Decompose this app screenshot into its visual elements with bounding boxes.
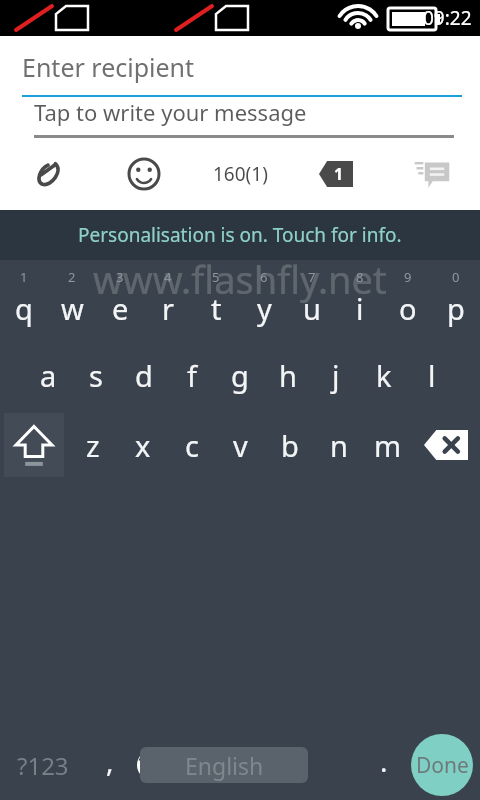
staticText: a — [40, 356, 57, 395]
button[interactable]: SIM 1 — [288, 138, 384, 210]
staticText: k — [376, 356, 392, 395]
staticText: 9 — [404, 268, 412, 286]
staticText: Done — [416, 751, 469, 780]
button[interactable]: l — [408, 340, 456, 410]
staticText: r — [162, 289, 174, 328]
staticText: 160(1) — [213, 161, 268, 187]
button[interactable]: Emoji — [96, 138, 192, 210]
staticText: 1 — [20, 268, 28, 286]
button[interactable]: English — [140, 747, 308, 783]
button[interactable]: Personalisation is on. Touch for info. — [0, 210, 480, 260]
staticText: f — [187, 356, 197, 395]
staticText: 09:22 — [423, 5, 472, 31]
staticText: o — [399, 289, 417, 328]
button[interactable]: g — [216, 340, 264, 410]
staticText: q — [15, 289, 33, 328]
button[interactable]: 1 — [0, 266, 48, 340]
button[interactable]: Attach — [0, 138, 96, 210]
button[interactable]: m — [363, 410, 412, 480]
button[interactable]: d — [120, 340, 168, 410]
staticText: e — [112, 289, 129, 328]
button[interactable]: 3 — [96, 266, 144, 340]
button[interactable]: 2 — [48, 266, 96, 340]
button[interactable]: Enter recipient — [0, 36, 480, 97]
button[interactable]: 5 — [192, 266, 240, 340]
button[interactable]: ?123 — [0, 734, 86, 796]
staticText: x — [135, 426, 151, 465]
staticText: Personalisation is on. Touch for info. — [78, 222, 402, 248]
staticText: i — [356, 289, 364, 328]
staticText: w — [61, 289, 84, 328]
button[interactable]: z — [68, 410, 118, 480]
staticText: n — [330, 426, 348, 465]
staticText: 1 — [334, 163, 344, 185]
staticText: 0 — [452, 268, 460, 286]
staticText: j — [332, 356, 340, 395]
staticText: 5 — [212, 268, 220, 286]
button[interactable]: Done — [411, 734, 473, 796]
button[interactable]: Backspace — [412, 410, 480, 480]
staticText: y — [257, 289, 272, 328]
button[interactable]: . — [360, 734, 408, 796]
button[interactable]: f — [168, 340, 216, 410]
staticText: 7 — [308, 268, 316, 286]
staticText: www.flashfly.net — [93, 253, 387, 305]
staticText: 6 — [260, 268, 268, 286]
button[interactable]: s — [72, 340, 120, 410]
button[interactable]: 9 — [384, 266, 432, 340]
button[interactable]: n — [314, 410, 363, 480]
staticText: h — [279, 356, 297, 395]
staticText: 2 — [68, 268, 76, 286]
staticText: l — [428, 356, 436, 395]
button[interactable]: b — [265, 410, 314, 480]
button[interactable]: Messages — [384, 138, 480, 210]
staticText: ?123 — [17, 749, 69, 782]
staticText: p — [447, 289, 465, 328]
button[interactable]: k — [360, 340, 408, 410]
staticText: u — [303, 289, 321, 328]
staticText: Tap to write your message — [34, 97, 307, 127]
staticText: 8 — [356, 268, 364, 286]
staticText: b — [281, 426, 299, 465]
staticText: c — [185, 426, 199, 465]
button[interactable]: Shift — [4, 413, 64, 477]
button[interactable]: x — [118, 410, 167, 480]
button[interactable]: 8 — [336, 266, 384, 340]
button[interactable]: 7 — [288, 266, 336, 340]
button[interactable]: a — [24, 340, 72, 410]
button[interactable]: 4 — [144, 266, 192, 340]
staticText: English — [185, 750, 264, 781]
staticText: g — [231, 356, 249, 395]
button[interactable]: j — [312, 340, 360, 410]
button[interactable]: Change language — [126, 734, 178, 796]
button[interactable]: 160(1) — [192, 138, 288, 210]
staticText: v — [233, 426, 248, 465]
staticText: Enter recipient — [22, 50, 195, 84]
button[interactable]: 0 — [432, 266, 480, 340]
button[interactable]: v — [216, 410, 265, 480]
button[interactable]: , — [86, 734, 134, 796]
staticText: d — [135, 356, 153, 395]
button[interactable]: c — [167, 410, 216, 480]
button[interactable]: 6 — [240, 266, 288, 340]
staticText: s — [89, 356, 103, 395]
staticText: . — [380, 742, 388, 780]
staticText: t — [211, 289, 222, 328]
staticText: 4 — [164, 268, 172, 286]
staticText: z — [86, 426, 100, 465]
button[interactable]: h — [264, 340, 312, 410]
staticText: , — [106, 742, 114, 780]
staticText: 3 — [116, 268, 124, 286]
button[interactable]: Tap to write your message — [0, 97, 480, 138]
staticText: m — [374, 426, 402, 465]
